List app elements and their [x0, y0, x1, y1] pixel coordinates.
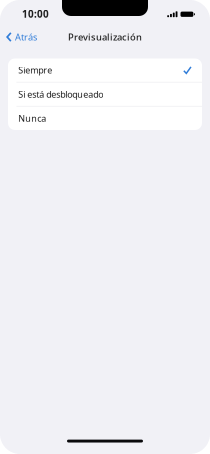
staticText: 10:00: [22, 7, 49, 21]
staticText: Nunca: [18, 112, 46, 124]
button[interactable]: Atrás: [0, 25, 43, 49]
button[interactable]: Nunca: [8, 107, 202, 130]
staticText: Si está desbloqueado: [18, 88, 103, 100]
button[interactable]: Si está desbloqueado: [8, 83, 202, 106]
button[interactable]: Siempre: [8, 58, 202, 82]
staticText: Previsualización: [68, 31, 142, 43]
staticText: Siempre: [18, 64, 52, 76]
staticText: Atrás: [15, 31, 37, 43]
